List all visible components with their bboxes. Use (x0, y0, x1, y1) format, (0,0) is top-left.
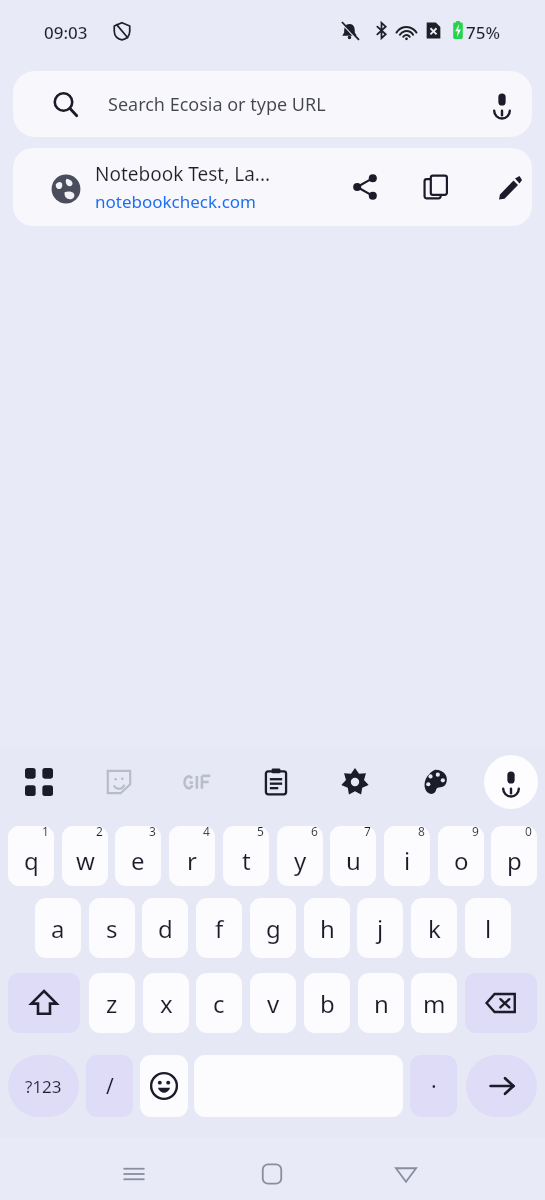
staticText: g (266, 912, 281, 945)
button[interactable]: l (465, 898, 511, 958)
button[interactable]: Backspace (465, 973, 537, 1033)
staticText: 09:03 (44, 21, 88, 44)
staticText: l (485, 912, 492, 945)
button[interactable]: n (358, 973, 404, 1033)
button[interactable]: x (143, 973, 189, 1033)
button[interactable]: / (86, 1055, 133, 1117)
button[interactable]: g (250, 898, 296, 958)
staticText: i (404, 844, 411, 877)
staticText: c (213, 987, 225, 1020)
button[interactable]: q (8, 826, 54, 886)
staticText: 7 (364, 826, 371, 839)
staticText: 2 (96, 826, 103, 839)
button[interactable]: Notebook Test, La... (13, 148, 532, 226)
staticText: a (51, 912, 65, 945)
button[interactable]: f (196, 898, 242, 958)
button[interactable]: y (277, 826, 323, 886)
staticText: Notebook Test, La... (95, 161, 271, 187)
button[interactable]: d (142, 898, 188, 958)
button[interactable]: Shift (8, 973, 80, 1033)
button[interactable]: Enter (466, 1055, 537, 1117)
button[interactable]: ?123 (8, 1055, 79, 1117)
staticText: k (428, 912, 441, 945)
button[interactable]: u (330, 826, 376, 886)
staticText: x (160, 987, 173, 1020)
staticText: 9 (472, 826, 479, 839)
button[interactable]: Search Ecosia or type URL (13, 71, 532, 137)
staticText: u (346, 844, 361, 877)
button[interactable]: Share (341, 163, 389, 211)
button[interactable]: m (411, 973, 457, 1033)
button[interactable]: c (196, 973, 242, 1033)
staticText: 6 (311, 826, 318, 839)
button[interactable]: Voice input (484, 755, 538, 809)
button[interactable]: e (115, 826, 161, 886)
button[interactable]: k (411, 898, 457, 958)
button[interactable]: a (35, 898, 81, 958)
button[interactable]: p (491, 826, 537, 886)
staticText: 75% (466, 21, 500, 44)
staticText: 5 (257, 826, 264, 839)
button[interactable]: h (304, 898, 350, 958)
staticText: y (294, 844, 307, 877)
staticText: 4 (203, 826, 210, 839)
staticText: j (377, 912, 384, 945)
staticText: ?123 (25, 1075, 62, 1098)
staticText: r (187, 844, 197, 877)
button[interactable]: Recent apps (106, 1146, 162, 1200)
staticText: s (106, 912, 118, 945)
button[interactable]: j (357, 898, 403, 958)
staticText: 8 (418, 826, 425, 839)
button[interactable]: t (223, 826, 269, 886)
button[interactable]: Themes (408, 755, 462, 809)
button[interactable]: s (89, 898, 135, 958)
staticText: h (320, 912, 335, 945)
staticText: notebookcheck.com (95, 190, 257, 213)
staticText: n (374, 987, 389, 1020)
staticText: p (507, 844, 522, 877)
staticText: q (24, 844, 39, 877)
button[interactable]: . (410, 1055, 457, 1117)
button[interactable]: v (250, 973, 296, 1033)
button[interactable]: GIF (171, 755, 225, 809)
button[interactable]: i (384, 826, 430, 886)
button[interactable]: z (89, 973, 135, 1033)
button[interactable]: w (62, 826, 108, 886)
button[interactable]: o (438, 826, 484, 886)
button[interactable]: Back (378, 1146, 434, 1200)
button[interactable]: Apps (12, 755, 66, 809)
staticText: b (320, 987, 335, 1020)
button[interactable]: Clipboard (249, 755, 303, 809)
button[interactable]: Home (244, 1146, 300, 1200)
button[interactable]: Edit (486, 163, 532, 211)
staticText: t (242, 844, 251, 877)
button[interactable]: Voice search (480, 82, 524, 126)
button[interactable]: r (169, 826, 215, 886)
staticText: v (267, 987, 280, 1020)
button[interactable]: Settings (328, 755, 382, 809)
staticText: 3 (149, 826, 156, 839)
staticText: . (431, 1066, 437, 1095)
button[interactable]: Copy (412, 163, 460, 211)
staticText: d (158, 912, 173, 945)
staticText: w (76, 844, 95, 877)
button[interactable]: Emoji (140, 1055, 188, 1117)
staticText: Search Ecosia or type URL (108, 92, 326, 117)
button[interactable]: b (304, 973, 350, 1033)
staticText: 0 (525, 826, 532, 839)
staticText: e (131, 844, 145, 877)
staticText: f (215, 912, 224, 945)
staticText: o (454, 844, 469, 877)
staticText: z (106, 987, 118, 1020)
staticText: m (423, 987, 446, 1020)
button[interactable]: Stickers (92, 755, 146, 809)
staticText: / (106, 1072, 114, 1101)
staticText: 1 (42, 826, 49, 839)
